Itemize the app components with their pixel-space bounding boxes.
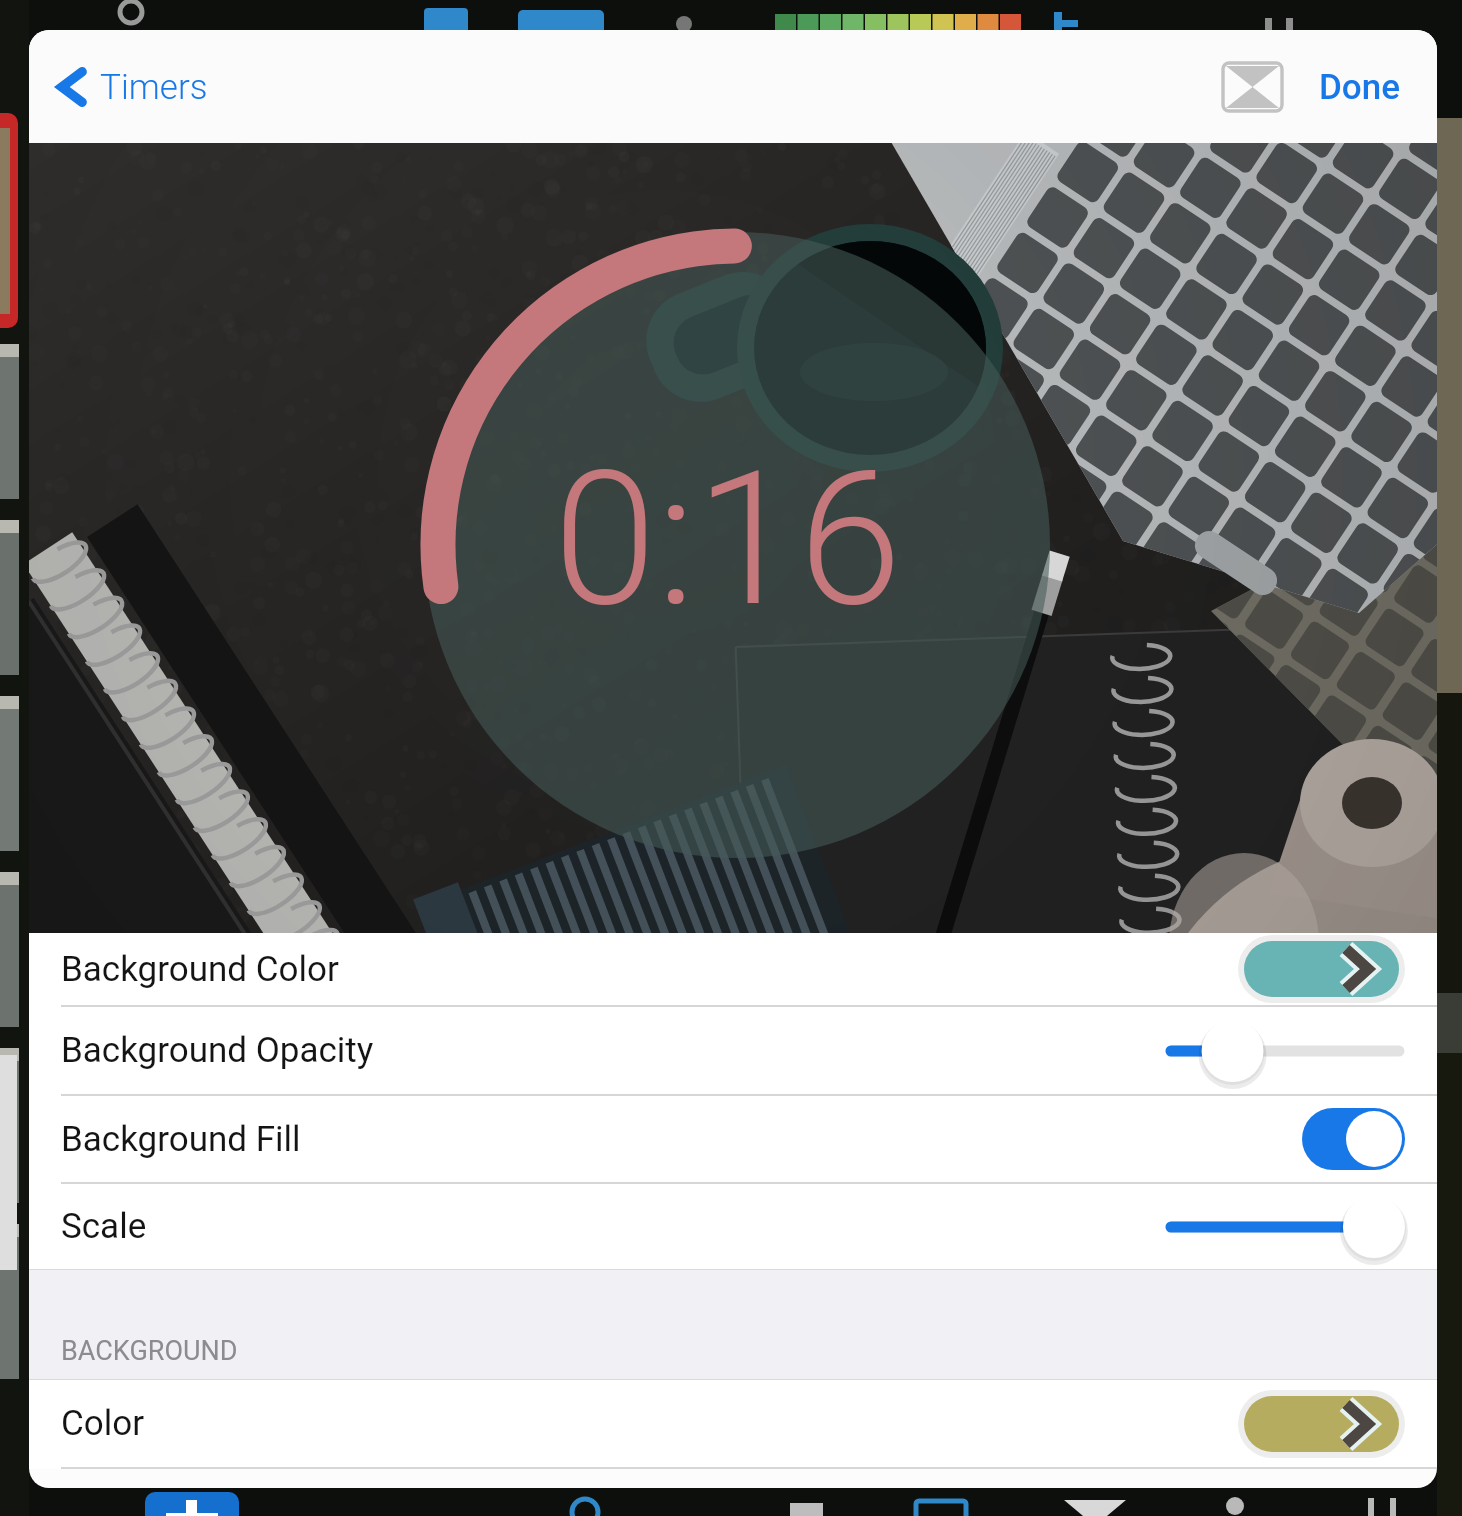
button[interactable]: Background Opacity bbox=[29, 1007, 1437, 1094]
button[interactable]: Background Color bbox=[29, 933, 1437, 1005]
staticText: Background Color bbox=[61, 949, 339, 990]
staticText: Timers bbox=[100, 67, 208, 108]
button[interactable]: Done bbox=[1319, 67, 1401, 108]
staticText: BACKGROUND bbox=[61, 1335, 238, 1367]
button[interactable] bbox=[1171, 1191, 1405, 1263]
button[interactable]: Image placeholder bbox=[1215, 50, 1289, 124]
button[interactable]: Color bbox=[29, 1380, 1437, 1467]
button[interactable] bbox=[1171, 1015, 1405, 1087]
staticText: Scale bbox=[61, 1206, 147, 1247]
staticText: Background Opacity bbox=[61, 1030, 374, 1071]
staticText: Background Fill bbox=[61, 1119, 301, 1160]
button[interactable]: Background Fill toggle bbox=[1302, 1108, 1405, 1170]
staticText: Color bbox=[61, 1403, 145, 1444]
button[interactable]: Timers bbox=[49, 64, 208, 110]
button[interactable]: Choose color bbox=[1238, 1390, 1405, 1458]
staticText: Done bbox=[1319, 67, 1401, 108]
staticText: 0:16 bbox=[553, 430, 902, 648]
button[interactable]: Background Fill bbox=[29, 1096, 1437, 1182]
button[interactable]: Choose color bbox=[1238, 935, 1405, 1003]
button[interactable]: Scale bbox=[29, 1184, 1437, 1269]
